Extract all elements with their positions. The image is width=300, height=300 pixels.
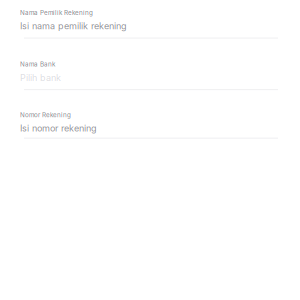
staticText: Pilih bank [20, 72, 61, 83]
staticText: Isi nomor rekening [20, 123, 97, 134]
staticText: Nomor Rekening [20, 111, 71, 119]
button[interactable]: Nomor Rekening [20, 111, 278, 139]
button[interactable]: Nama Bank [20, 61, 278, 90]
staticText: Nama Bank [20, 61, 55, 68]
staticText: Nama Pemilik Rekening [20, 9, 93, 17]
button[interactable]: Nama Pemilik Rekening [20, 9, 278, 39]
staticText: Isi nama pemilik rekening [20, 21, 127, 32]
